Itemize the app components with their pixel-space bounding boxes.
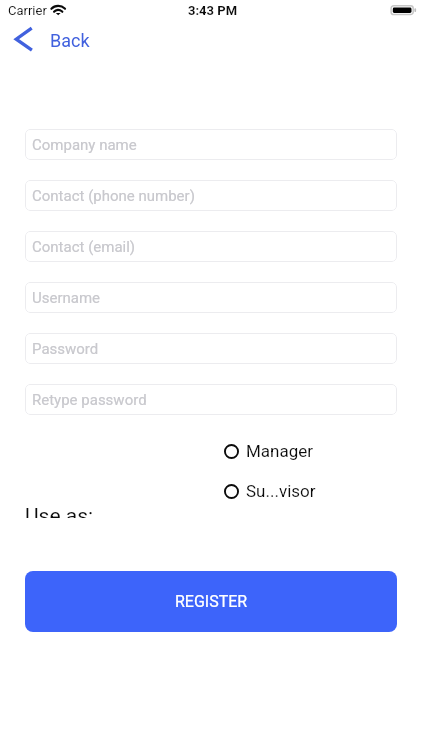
staticText: Manager [246,441,314,461]
staticText: Contact (email) [32,238,136,256]
staticText: Su...visor [246,481,316,501]
button[interactable]: Company name [25,129,397,160]
staticText: Retype password [32,391,147,409]
staticText: Use as: [25,504,94,518]
button[interactable]: Manager [224,441,314,461]
staticText: Back [50,30,90,51]
staticText: 3:43 PM [188,3,238,18]
button[interactable]: Username [25,282,397,313]
button[interactable]: REGISTER [25,571,397,632]
button[interactable]: Back [13,24,90,56]
staticText: Password [32,340,99,358]
staticText: Company name [32,136,137,154]
button[interactable]: Contact (phone number) [25,180,397,211]
other: Back [13,24,35,56]
button[interactable]: Password [25,333,397,364]
staticText: Username [32,289,101,307]
staticText: Carrier [8,3,47,18]
button[interactable]: Contact (email) [25,231,397,262]
staticText: REGISTER [175,592,248,611]
button[interactable]: Su...visor [224,481,316,501]
button[interactable]: Retype password [25,384,397,415]
staticText: Contact (phone number) [32,187,195,205]
